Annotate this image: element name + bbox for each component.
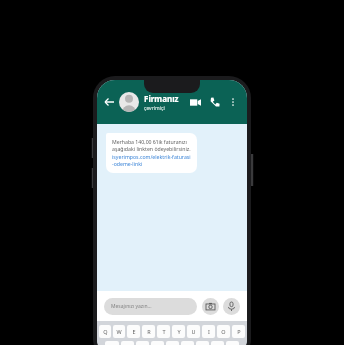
staticText: Firmanız [144,93,179,104]
button[interactable]: Merhaba 140,00 ₺'lik faturanızı aşağıdak… [106,133,197,173]
staticText: Merhaba 140,00 ₺'lik faturanızı aşağıdak… [112,138,191,153]
button[interactable]: Y [172,325,185,338]
button[interactable]: Q [99,325,111,338]
staticText: I [208,328,210,335]
staticText: isyerimpos.com/elektrik-faturasi -odeme-… [112,153,191,168]
button[interactable]: W [113,325,125,338]
staticText: O [221,328,226,335]
button[interactable]: Back [102,95,116,109]
staticText: Y [177,328,181,335]
button[interactable]: R [142,325,155,338]
staticText: çevrimiçi [144,105,165,112]
button[interactable]: Mesajınızı yazın... [104,298,197,315]
button[interactable]: Profile photo [119,92,139,112]
staticText: E [132,328,136,335]
staticText: W [116,328,122,335]
button[interactable]: L [226,341,239,345]
staticText: T [162,328,166,335]
button[interactable]: U [187,325,200,338]
button[interactable]: K [211,341,224,345]
button[interactable]: Firmanız [144,93,187,112]
button[interactable]: F [151,341,164,345]
staticText: P [237,328,241,335]
button[interactable]: J [196,341,209,345]
button[interactable]: P [232,325,245,338]
button[interactable]: E [127,325,140,338]
button[interactable]: O [217,325,230,338]
button[interactable]: D [136,341,149,345]
button[interactable]: Video call [187,94,203,110]
button[interactable]: H [181,341,194,345]
button[interactable]: More options [226,95,240,109]
staticText: U [191,328,196,335]
button[interactable]: S [121,341,134,345]
staticText: Mesajınızı yazın... [111,303,152,310]
button[interactable]: Voice call [207,94,223,110]
button[interactable]: T [157,325,170,338]
button[interactable]: I [202,325,215,338]
button[interactable]: G [166,341,179,345]
button[interactable]: Voice message [223,298,240,315]
staticText: Q [103,328,108,335]
button[interactable]: Camera [202,298,219,315]
button[interactable]: A [105,341,119,345]
staticText: R [147,328,151,335]
